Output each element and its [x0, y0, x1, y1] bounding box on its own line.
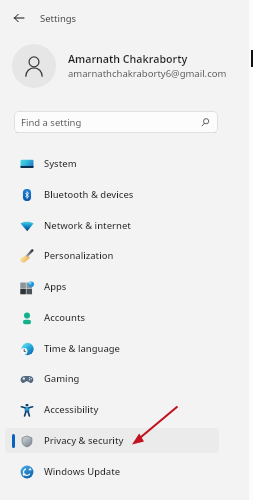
staticText: Settings — [40, 12, 77, 25]
staticText: Windows Update — [44, 465, 121, 478]
staticText: Find a setting — [21, 116, 82, 129]
button[interactable]: Apps — [5, 274, 219, 299]
staticText: Bluetooth & devices — [44, 188, 134, 201]
staticText: Personalization — [44, 249, 114, 262]
button[interactable]: Accessibility — [5, 397, 219, 422]
button[interactable]: Find a setting — [14, 111, 218, 133]
button[interactable]: Privacy & security — [5, 428, 219, 453]
button[interactable]: Bluetooth & devices — [5, 182, 219, 207]
staticText: Gaming — [44, 372, 80, 385]
button[interactable]: Windows Update — [5, 459, 219, 484]
button[interactable]: Amarnath Chakraborty — [12, 44, 249, 88]
button[interactable]: Back — [8, 7, 30, 29]
button[interactable]: Network & internet — [5, 213, 219, 238]
staticText: Privacy & security — [44, 434, 124, 447]
button[interactable]: Personalization — [5, 243, 219, 268]
staticText: System — [44, 157, 77, 170]
staticText: Time & language — [44, 342, 120, 355]
button[interactable]: Gaming — [5, 366, 219, 391]
staticText: Accounts — [44, 311, 86, 324]
staticText: amarnathchakraborty6@gmail.com — [68, 67, 227, 80]
staticText: Apps — [44, 280, 67, 293]
staticText: Network & internet — [44, 219, 131, 232]
button[interactable]: Accounts — [5, 305, 219, 330]
button[interactable]: System — [5, 151, 219, 176]
staticText: Accessibility — [44, 403, 99, 416]
staticText: Amarnath Chakraborty — [68, 52, 188, 66]
button[interactable]: Time & language — [5, 336, 219, 361]
